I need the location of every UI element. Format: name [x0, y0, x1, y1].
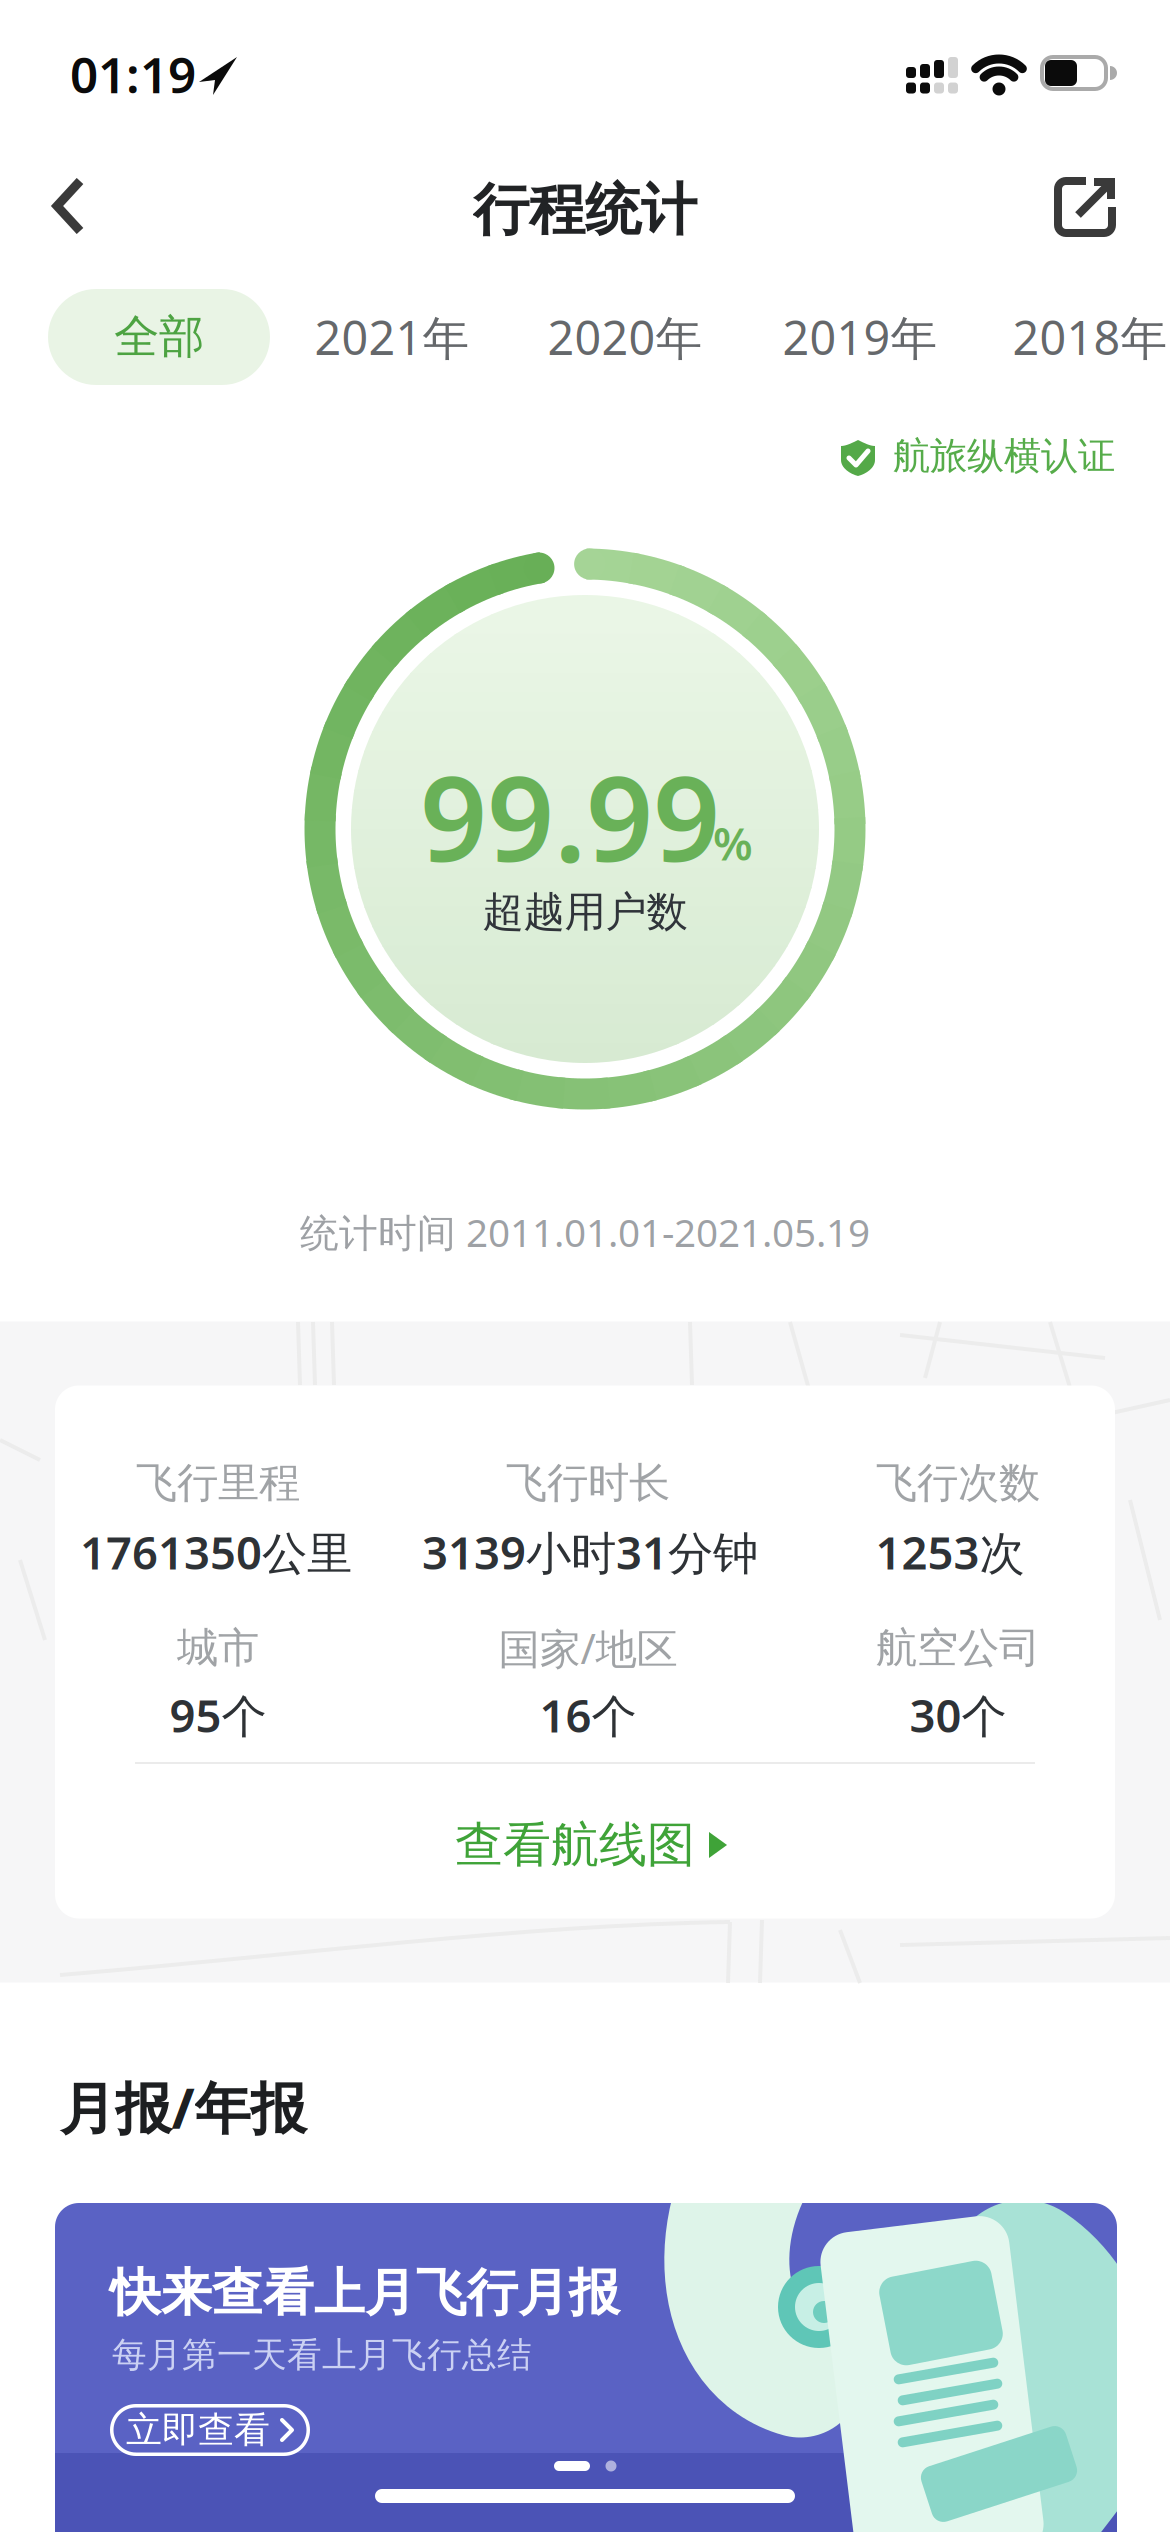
staticText: 2021年	[314, 306, 469, 368]
staticText: 统计时间 2011.01.01-2021.05.19	[300, 1206, 870, 1258]
button[interactable]	[1030, 151, 1140, 261]
staticText: 30个	[909, 1685, 1006, 1745]
staticText: 飞行时长	[506, 1458, 670, 1508]
staticText: 每月第一天看上月飞行总结	[112, 2334, 532, 2376]
staticText: 国家/地区	[498, 1621, 677, 1675]
staticText: 全部	[114, 309, 204, 365]
staticText: 飞行次数	[876, 1458, 1040, 1508]
staticText: 航空公司	[876, 1623, 1040, 1673]
button[interactable]: 2019年	[730, 289, 990, 385]
staticText: 2018年	[1012, 306, 1167, 368]
staticText: 查看航线图	[455, 1815, 695, 1874]
button[interactable]: 查看航线图	[455, 1805, 729, 1885]
staticText: 16个	[539, 1685, 636, 1745]
staticText: 1253次	[875, 1522, 1024, 1582]
staticText: 立即查看	[126, 2408, 270, 2452]
staticText: 航旅纵横认证	[893, 433, 1115, 479]
staticText: 95个	[169, 1685, 266, 1745]
button[interactable]: 2020年	[495, 289, 755, 385]
staticText: 城市	[177, 1623, 259, 1673]
button[interactable]: 快来查看上月飞行月报	[55, 2203, 1117, 2532]
staticText: 月报/年报	[59, 2070, 306, 2144]
button[interactable]	[12, 151, 122, 261]
staticText: %	[713, 813, 753, 873]
staticText: 2019年	[782, 306, 937, 368]
staticText: 99.99	[420, 738, 720, 894]
staticText: 超越用户数	[482, 887, 687, 937]
staticText: 2020年	[547, 306, 702, 368]
staticText: 行程统计	[473, 176, 697, 244]
button[interactable]: 2018年	[960, 289, 1170, 385]
button[interactable]: 立即查看	[110, 2404, 310, 2456]
staticText: 快来查看上月飞行月报	[110, 2262, 620, 2324]
staticText: 01:19	[70, 41, 196, 107]
staticText: 1761350公里	[80, 1522, 352, 1582]
staticText: 飞行里程	[136, 1458, 300, 1508]
staticText: 3139小时31分钟	[422, 1522, 758, 1582]
button[interactable]: 2021年	[262, 289, 522, 385]
button[interactable]: 全部	[48, 289, 270, 385]
